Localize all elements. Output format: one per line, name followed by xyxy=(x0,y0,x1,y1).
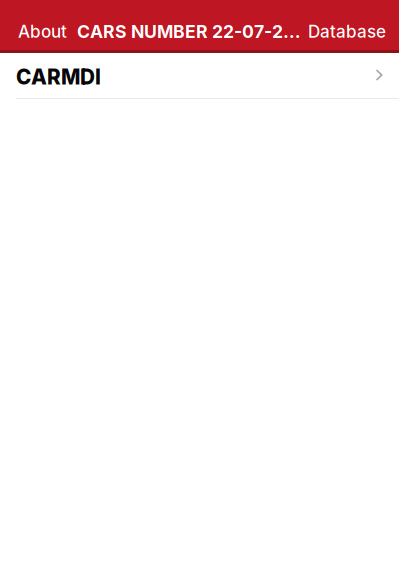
staticText: CARS NUMBER 22-07-2… xyxy=(77,21,301,42)
staticText: Database xyxy=(308,21,386,42)
button[interactable]: About xyxy=(18,21,67,42)
staticText: CARMDI xyxy=(16,64,101,89)
staticText: About xyxy=(18,21,67,42)
button[interactable]: CARMDI xyxy=(0,53,399,99)
button[interactable]: Database xyxy=(308,21,386,42)
button[interactable]: CARS NUMBER 22-07-2… xyxy=(77,21,301,42)
